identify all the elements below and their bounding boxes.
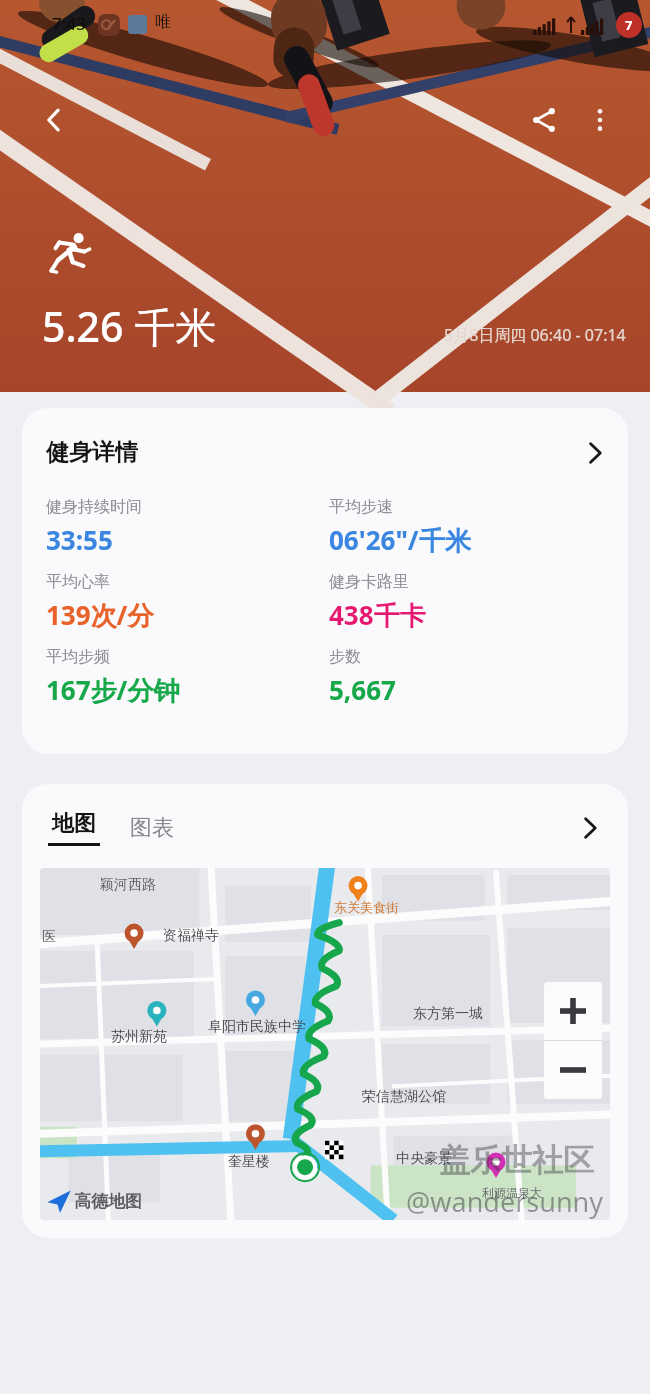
button[interactable]: Zoom in <box>544 982 602 1040</box>
staticText: 阜阳市民族中学 <box>208 1018 306 1036</box>
button[interactable]: More options <box>572 92 628 148</box>
staticText: 139次/分 <box>46 597 154 633</box>
staticText: 奎星楼 <box>228 1153 270 1171</box>
button[interactable]: 地图 <box>46 810 102 846</box>
staticText: 步数 <box>329 647 361 667</box>
staticText: 苏州新苑 <box>111 1028 167 1046</box>
staticText: 图表 <box>130 814 174 842</box>
button[interactable]: Share <box>516 92 572 148</box>
staticText: 5.26 千米 <box>42 298 217 354</box>
staticText: 高德地图 <box>74 1191 142 1212</box>
staticText: 唯 <box>155 12 171 32</box>
staticText: 颖河西路 <box>100 876 156 894</box>
staticText: 167步/分钟 <box>46 672 180 708</box>
staticText: 5月8日周四 06:40 - 07:14 <box>444 324 626 346</box>
staticText: 7 <box>625 16 633 34</box>
button[interactable]: 颖河西路 <box>40 868 610 1220</box>
staticText: 盖乐世社区 <box>439 1141 594 1180</box>
staticText: 06'26"/千米 <box>329 522 471 558</box>
staticText: 健身持续时间 <box>46 497 142 517</box>
staticText: 利源温泉大 <box>482 1185 542 1200</box>
staticText: 健身卡路里 <box>329 572 409 592</box>
staticText: 东关美食街 <box>334 899 399 915</box>
staticText: 438千卡 <box>329 597 426 633</box>
staticText: 33:55 <box>46 522 113 557</box>
staticText: 5,667 <box>329 672 396 707</box>
staticText: 7:43 <box>52 12 86 35</box>
button[interactable]: Open map <box>574 812 606 844</box>
button[interactable]: Back <box>26 92 82 148</box>
staticText: 地图 <box>52 810 96 838</box>
staticText: 医 <box>42 928 56 946</box>
staticText: 平均步频 <box>46 647 110 667</box>
staticText: 东方第一城 <box>413 1005 483 1023</box>
staticText: 健身详情 <box>46 438 138 467</box>
staticText: 中央豪景 <box>396 1150 452 1168</box>
button[interactable]: 图表 <box>128 811 176 845</box>
staticText: 平均心率 <box>46 572 110 592</box>
staticText: 平均步速 <box>329 497 393 517</box>
staticText: 资福禅寺 <box>163 927 219 945</box>
button[interactable]: Zoom out <box>544 1041 602 1099</box>
staticText: @wandersunny <box>406 1183 604 1220</box>
button[interactable]: 健身详情 <box>22 408 628 483</box>
staticText: 荣信慧湖公馆 <box>362 1088 446 1106</box>
